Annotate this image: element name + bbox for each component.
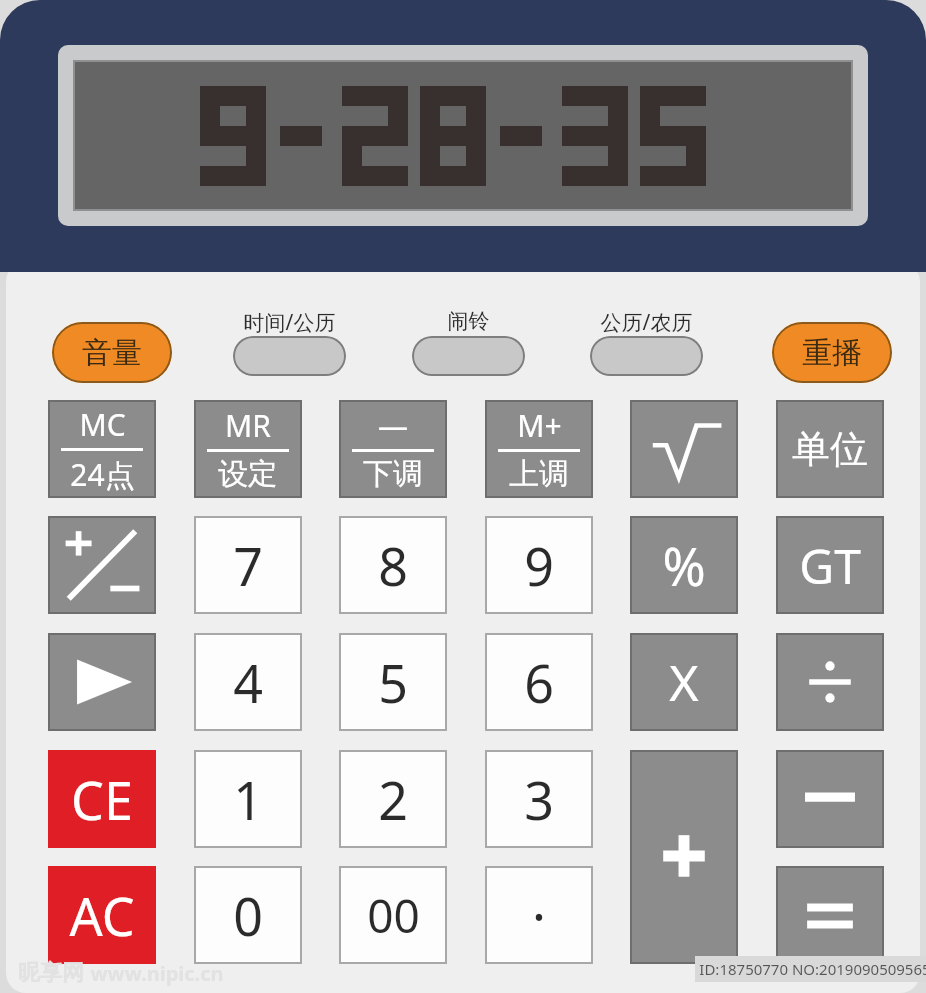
button[interactable]: AC: [48, 866, 156, 964]
staticText: ID:18750770 NO:20190905095650630315: [699, 959, 926, 979]
staticText: 重播: [802, 334, 862, 372]
staticText: 0: [233, 880, 263, 951]
staticText: 9: [524, 530, 554, 601]
staticText: M+: [517, 405, 562, 446]
button[interactable]: 7: [196, 518, 300, 612]
staticText: MR: [225, 405, 271, 446]
staticText: %: [662, 530, 706, 601]
button[interactable]: X: [632, 635, 736, 729]
staticText: 公历/农历: [560, 308, 733, 337]
staticText: 音量: [82, 334, 142, 372]
button[interactable]: Play: [50, 635, 154, 729]
button[interactable]: Divide: [778, 635, 882, 729]
staticText: 时间/公历: [203, 308, 376, 337]
button[interactable]: MC: [50, 402, 154, 496]
staticText: AC: [69, 880, 135, 951]
button[interactable]: 00: [341, 868, 445, 962]
button[interactable]: 5: [341, 635, 445, 729]
button[interactable]: 重播: [772, 322, 892, 383]
staticText: 00: [367, 884, 420, 947]
staticText: 3: [524, 764, 554, 835]
button[interactable]: Plus: [632, 752, 736, 962]
button[interactable]: 音量: [52, 322, 172, 383]
button[interactable]: Minus: [778, 752, 882, 846]
staticText: 24点: [70, 454, 135, 495]
button[interactable]: CE: [48, 750, 156, 848]
button[interactable]: Equals: [778, 868, 882, 962]
button[interactable]: 6: [487, 635, 591, 729]
button[interactable]: %: [632, 518, 736, 612]
staticText: 昵享网: [18, 959, 84, 987]
staticText: 单位: [792, 425, 868, 473]
button[interactable]: GT: [778, 518, 882, 612]
staticText: 7: [233, 530, 263, 601]
staticText: 6: [524, 647, 554, 718]
button[interactable]: 4: [196, 635, 300, 729]
button[interactable]: 时间/公历: [233, 336, 346, 376]
button[interactable]: 8: [341, 518, 445, 612]
button[interactable]: —: [341, 402, 445, 496]
button[interactable]: 3: [487, 752, 591, 846]
staticText: 8: [378, 530, 408, 601]
button[interactable]: 0: [196, 868, 300, 962]
staticText: 闹铃: [382, 308, 555, 334]
staticText: 1: [233, 764, 263, 835]
staticText: ·: [532, 880, 546, 951]
staticText: 设定: [218, 455, 278, 493]
button[interactable]: 9: [487, 518, 591, 612]
button[interactable]: Square root: [632, 402, 736, 496]
staticText: CE: [71, 764, 133, 835]
staticText: 下调: [363, 455, 423, 493]
staticText: 2: [378, 764, 408, 835]
button[interactable]: ·: [487, 868, 591, 962]
staticText: X: [669, 648, 699, 716]
button[interactable]: 公历/农历: [590, 336, 703, 376]
staticText: MC: [79, 404, 126, 445]
button[interactable]: 闹铃: [412, 336, 525, 376]
button[interactable]: 2: [341, 752, 445, 846]
staticText: 上调: [509, 455, 569, 493]
button[interactable]: MR: [196, 402, 300, 496]
staticText: 4: [233, 647, 263, 718]
button[interactable]: Plus minus sign: [50, 518, 154, 612]
staticText: —: [378, 405, 408, 446]
staticText: GT: [799, 533, 861, 598]
button[interactable]: M+: [487, 402, 591, 496]
button[interactable]: 1: [196, 752, 300, 846]
button[interactable]: 单位: [778, 402, 882, 496]
staticText: 5: [378, 647, 408, 718]
staticText: www.nipic.cn: [90, 960, 224, 987]
